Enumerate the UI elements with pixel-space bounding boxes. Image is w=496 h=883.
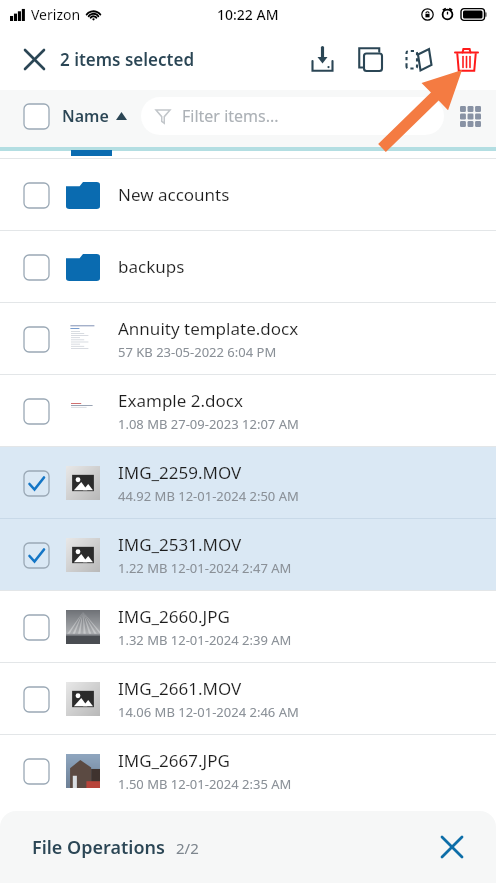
staticText: IMG_2531.MOV (118, 533, 242, 556)
staticText: 1.22 MB 12-01-2024 2:47 AM (118, 559, 292, 577)
button[interactable]: Delete (442, 35, 490, 83)
staticText: 57 KB 23-05-2022 6:04 PM (118, 343, 277, 361)
staticText: File Operations (32, 835, 165, 860)
button[interactable]: Copy (346, 35, 394, 83)
button[interactable]: Annuity template.docx (0, 303, 496, 374)
button[interactable]: IMG_2531.MOV (0, 519, 496, 590)
staticText: Verizon (31, 5, 81, 24)
staticText: 10:22 AM (217, 5, 279, 24)
staticText: 2/2 (176, 838, 199, 858)
staticText: 1.32 MB 12-01-2024 2:39 AM (118, 631, 292, 649)
staticText: New accounts (118, 183, 230, 206)
button[interactable]: Move (394, 35, 442, 83)
button[interactable]: backups (0, 231, 496, 302)
button[interactable]: Grid view (444, 90, 496, 142)
staticText: IMG_2667.JPG (118, 749, 230, 772)
button[interactable]: Select all (18, 98, 54, 134)
staticText: IMG_2660.JPG (118, 605, 230, 628)
staticText: backups (118, 255, 185, 278)
staticText: 44.92 MB 12-01-2024 2:50 AM (118, 487, 299, 505)
button[interactable]: Close selection (12, 37, 56, 81)
button[interactable]: IMG_2259.MOV (0, 447, 496, 518)
button[interactable]: New accounts (0, 159, 496, 230)
button[interactable]: Download (298, 35, 346, 83)
button[interactable]: Dismiss file operations (430, 825, 474, 869)
button[interactable]: Example 2.docx (0, 375, 496, 446)
button[interactable]: Filter items... (141, 97, 444, 135)
button[interactable]: IMG_2660.JPG (0, 591, 496, 662)
staticText: Name (62, 105, 109, 127)
staticText: 1.50 MB 12-01-2024 2:35 AM (118, 775, 292, 793)
button[interactable]: IMG_2667.JPG (0, 735, 496, 806)
staticText: IMG_2661.MOV (118, 677, 242, 700)
button[interactable]: File Operations (0, 811, 496, 883)
staticText: 14.06 MB 12-01-2024 2:46 AM (118, 703, 299, 721)
button[interactable]: Name (62, 105, 127, 127)
staticText: Filter items... (182, 105, 279, 127)
staticText: 2 items selected (60, 48, 195, 71)
staticText: Example 2.docx (118, 389, 243, 412)
staticText: Annuity template.docx (118, 317, 299, 340)
staticText: 1.08 MB 27-09-2023 12:07 AM (118, 415, 299, 433)
staticText: IMG_2259.MOV (118, 461, 242, 484)
button[interactable]: IMG_2661.MOV (0, 663, 496, 734)
